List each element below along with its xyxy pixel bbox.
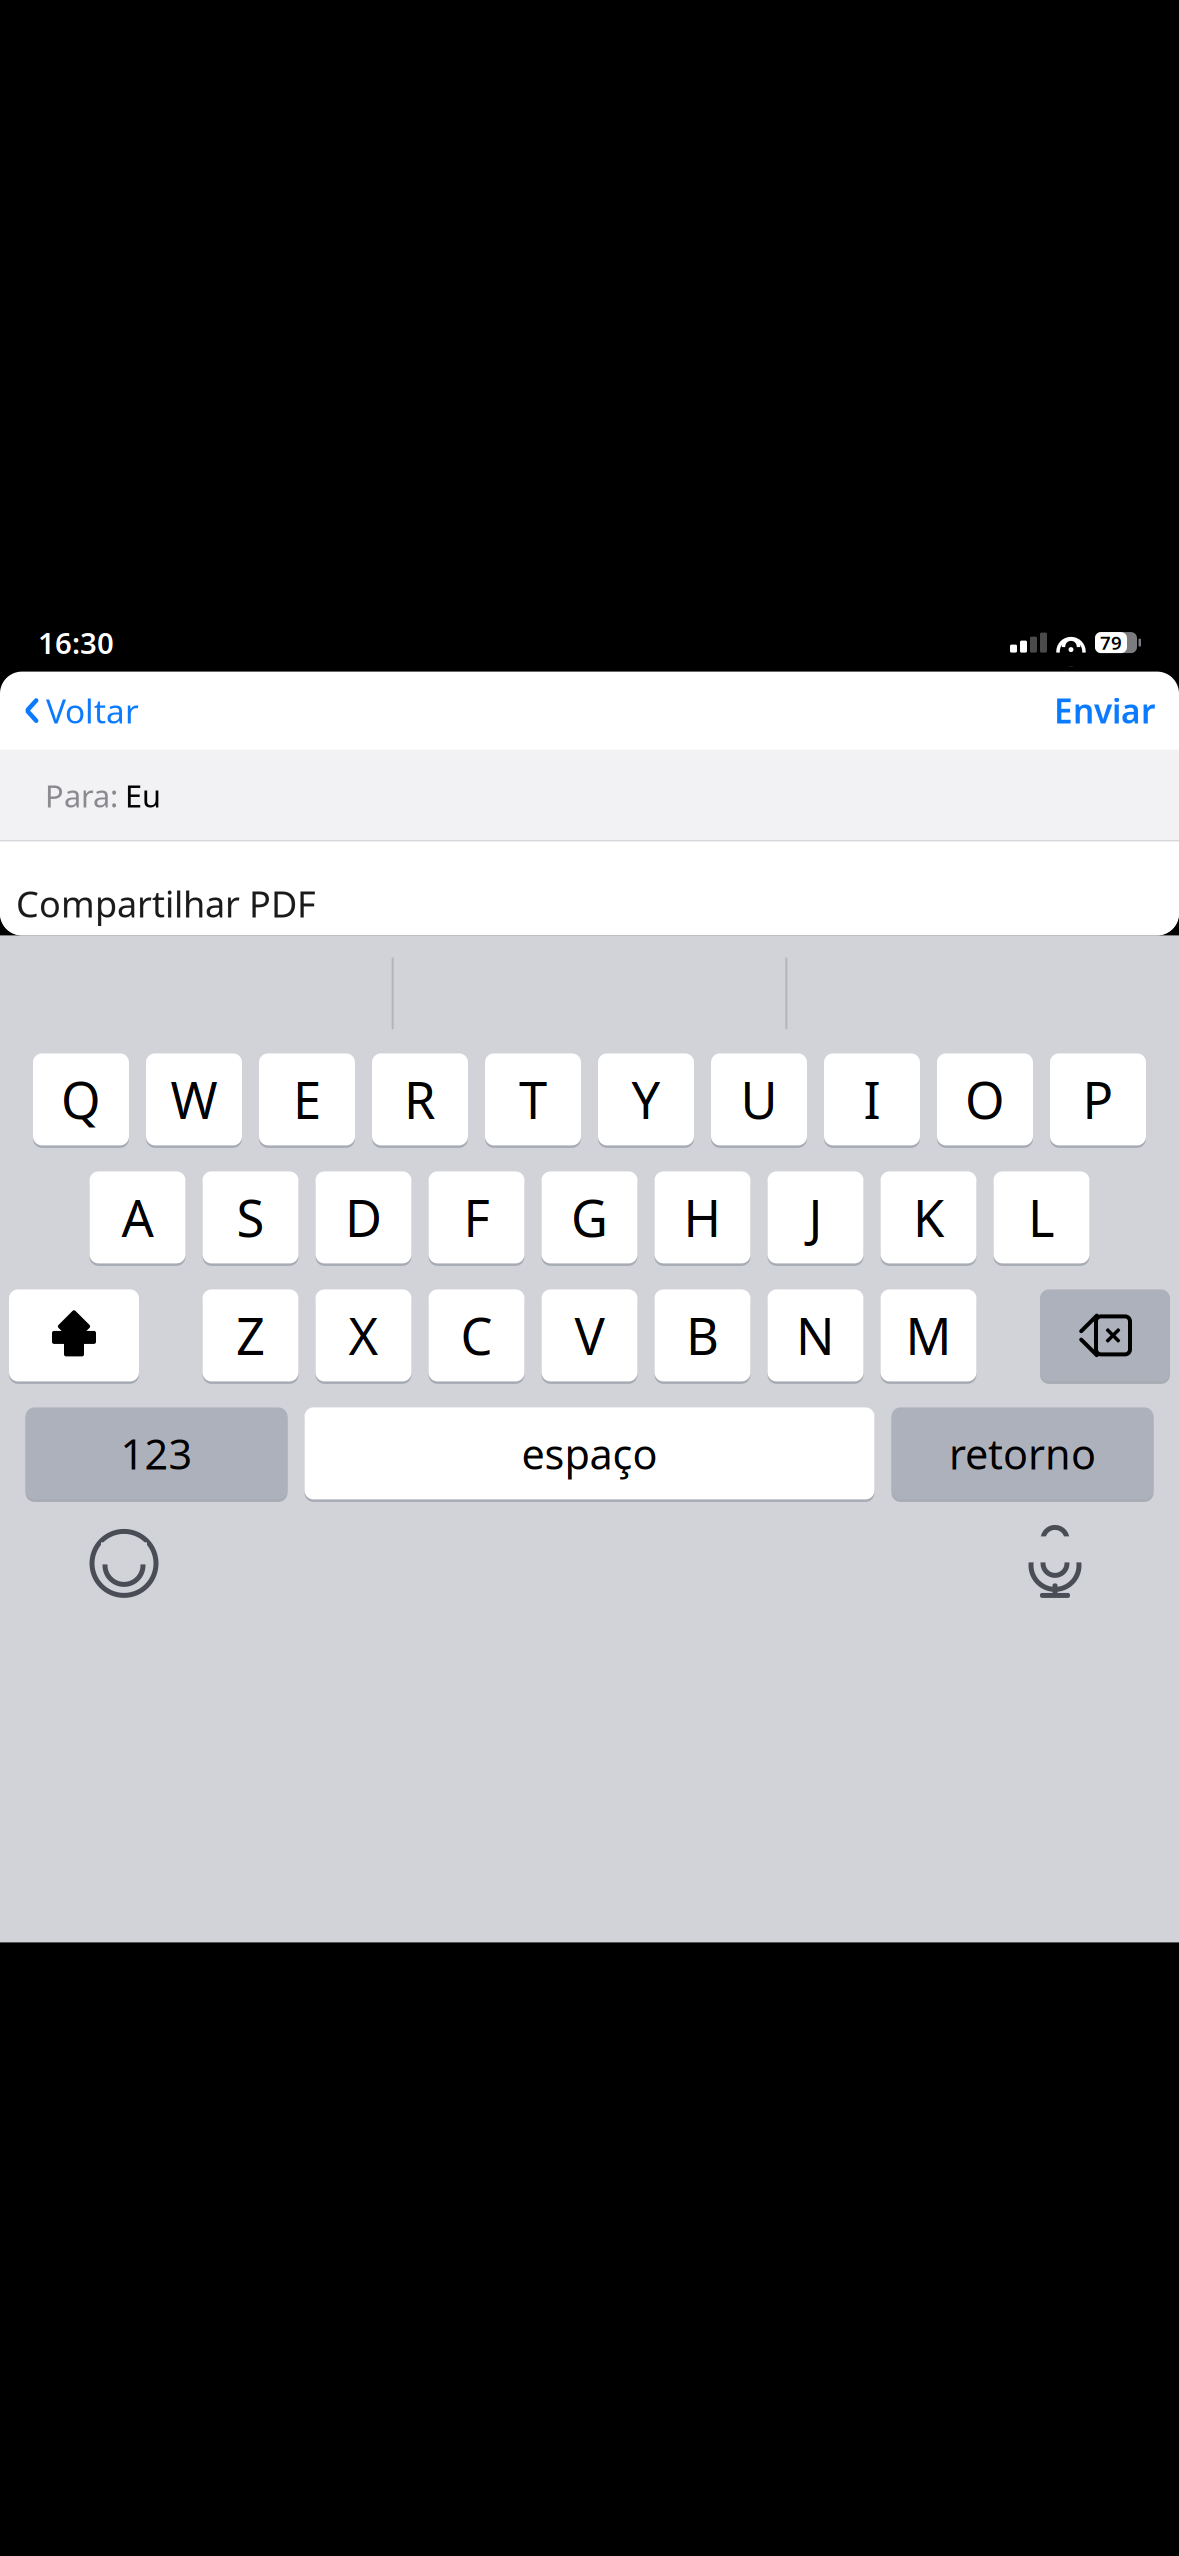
staticText: R [404,1066,436,1133]
button[interactable]: R [372,1051,468,1147]
staticText: M [905,1302,951,1369]
button[interactable]: 123 [25,1405,287,1501]
staticText: C [460,1302,492,1369]
staticText: D [345,1184,382,1251]
staticText: H [683,1184,721,1251]
staticText: S [236,1184,264,1251]
staticText: I [863,1066,880,1133]
button[interactable]: Shift [9,1287,139,1383]
staticText: Q [61,1066,101,1133]
button[interactable]: F [428,1169,524,1265]
button[interactable]: Voltar [20,680,143,741]
button[interactable]: Y [598,1051,694,1147]
button[interactable]: O [937,1051,1033,1147]
button[interactable]: B [654,1287,750,1383]
button[interactable]: K [880,1169,976,1265]
button[interactable]: T [485,1051,581,1147]
button[interactable]: S [202,1169,298,1265]
button[interactable]: Z [202,1287,298,1383]
button[interactable]: Q [33,1051,129,1147]
staticText: E [293,1066,321,1133]
button[interactable]: A [89,1169,185,1265]
staticText: B [686,1302,719,1369]
staticText: W [170,1066,217,1133]
staticText: A [121,1184,153,1251]
staticText: Enviar [1054,688,1155,733]
staticText: F [463,1184,489,1251]
button[interactable]: J [767,1169,863,1265]
staticText: O [965,1066,1005,1133]
button[interactable]: Delete [1040,1287,1170,1383]
staticText: L [1028,1184,1055,1251]
staticText: X [348,1302,378,1369]
staticText: Eu [125,775,161,816]
button[interactable]: retorno [891,1405,1153,1501]
staticText: 123 [120,1426,192,1481]
button[interactable]: D [315,1169,411,1265]
staticText: retorno [949,1426,1096,1481]
button[interactable]: N [767,1287,863,1383]
button[interactable]: Para: [0,750,1179,842]
staticText: Y [631,1066,660,1133]
button[interactable]: Emoji [86,1525,162,1601]
button[interactable]: P [1050,1051,1146,1147]
button[interactable]: U [711,1051,807,1147]
staticText: G [571,1184,608,1251]
button[interactable]: M [880,1287,976,1383]
button[interactable]: V [541,1287,637,1383]
button[interactable]: X [315,1287,411,1383]
button[interactable]: Enviar [1050,680,1159,741]
button[interactable]: H [654,1169,750,1265]
staticText: Compartilhar PDF [16,880,316,927]
button[interactable]: W [146,1051,242,1147]
staticText: K [913,1184,944,1251]
staticText: 79 [1100,630,1122,655]
staticText: T [519,1066,547,1133]
staticText: Voltar [46,688,139,733]
button[interactable]: Dictate [1017,1523,1093,1603]
staticText: P [1082,1066,1113,1133]
staticText: Z [236,1302,265,1369]
staticText: V [574,1302,604,1369]
button[interactable]: C [428,1287,524,1383]
staticText: espaço [521,1426,657,1481]
staticText: 16:30 [38,623,114,662]
button[interactable]: espaço [304,1405,874,1501]
button[interactable]: E [259,1051,355,1147]
button[interactable]: I [824,1051,920,1147]
staticText: N [796,1302,835,1369]
staticText: Para: [45,775,118,816]
button[interactable]: G [541,1169,637,1265]
staticText: J [808,1184,822,1251]
button[interactable]: L [993,1169,1089,1265]
staticText: U [740,1066,777,1133]
